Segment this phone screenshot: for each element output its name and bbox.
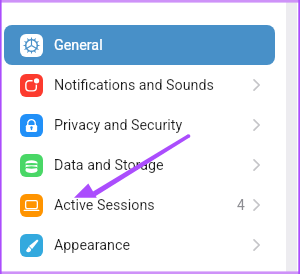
button[interactable]: Notifications and Sounds: [4, 65, 275, 105]
button[interactable]: General: [4, 25, 275, 65]
staticText: Appearance: [54, 237, 131, 254]
staticText: Data and Storage: [54, 157, 164, 174]
staticText: Active Sessions: [54, 197, 155, 214]
staticText: General: [54, 37, 103, 54]
staticText: 4: [237, 197, 245, 213]
staticText: Privacy and Security: [54, 117, 183, 134]
button[interactable]: Active Sessions: [4, 185, 275, 225]
button[interactable]: Data and Storage: [4, 145, 275, 185]
staticText: Notifications and Sounds: [54, 77, 214, 94]
button[interactable]: Appearance: [4, 225, 275, 265]
button[interactable]: Privacy and Security: [4, 105, 275, 145]
